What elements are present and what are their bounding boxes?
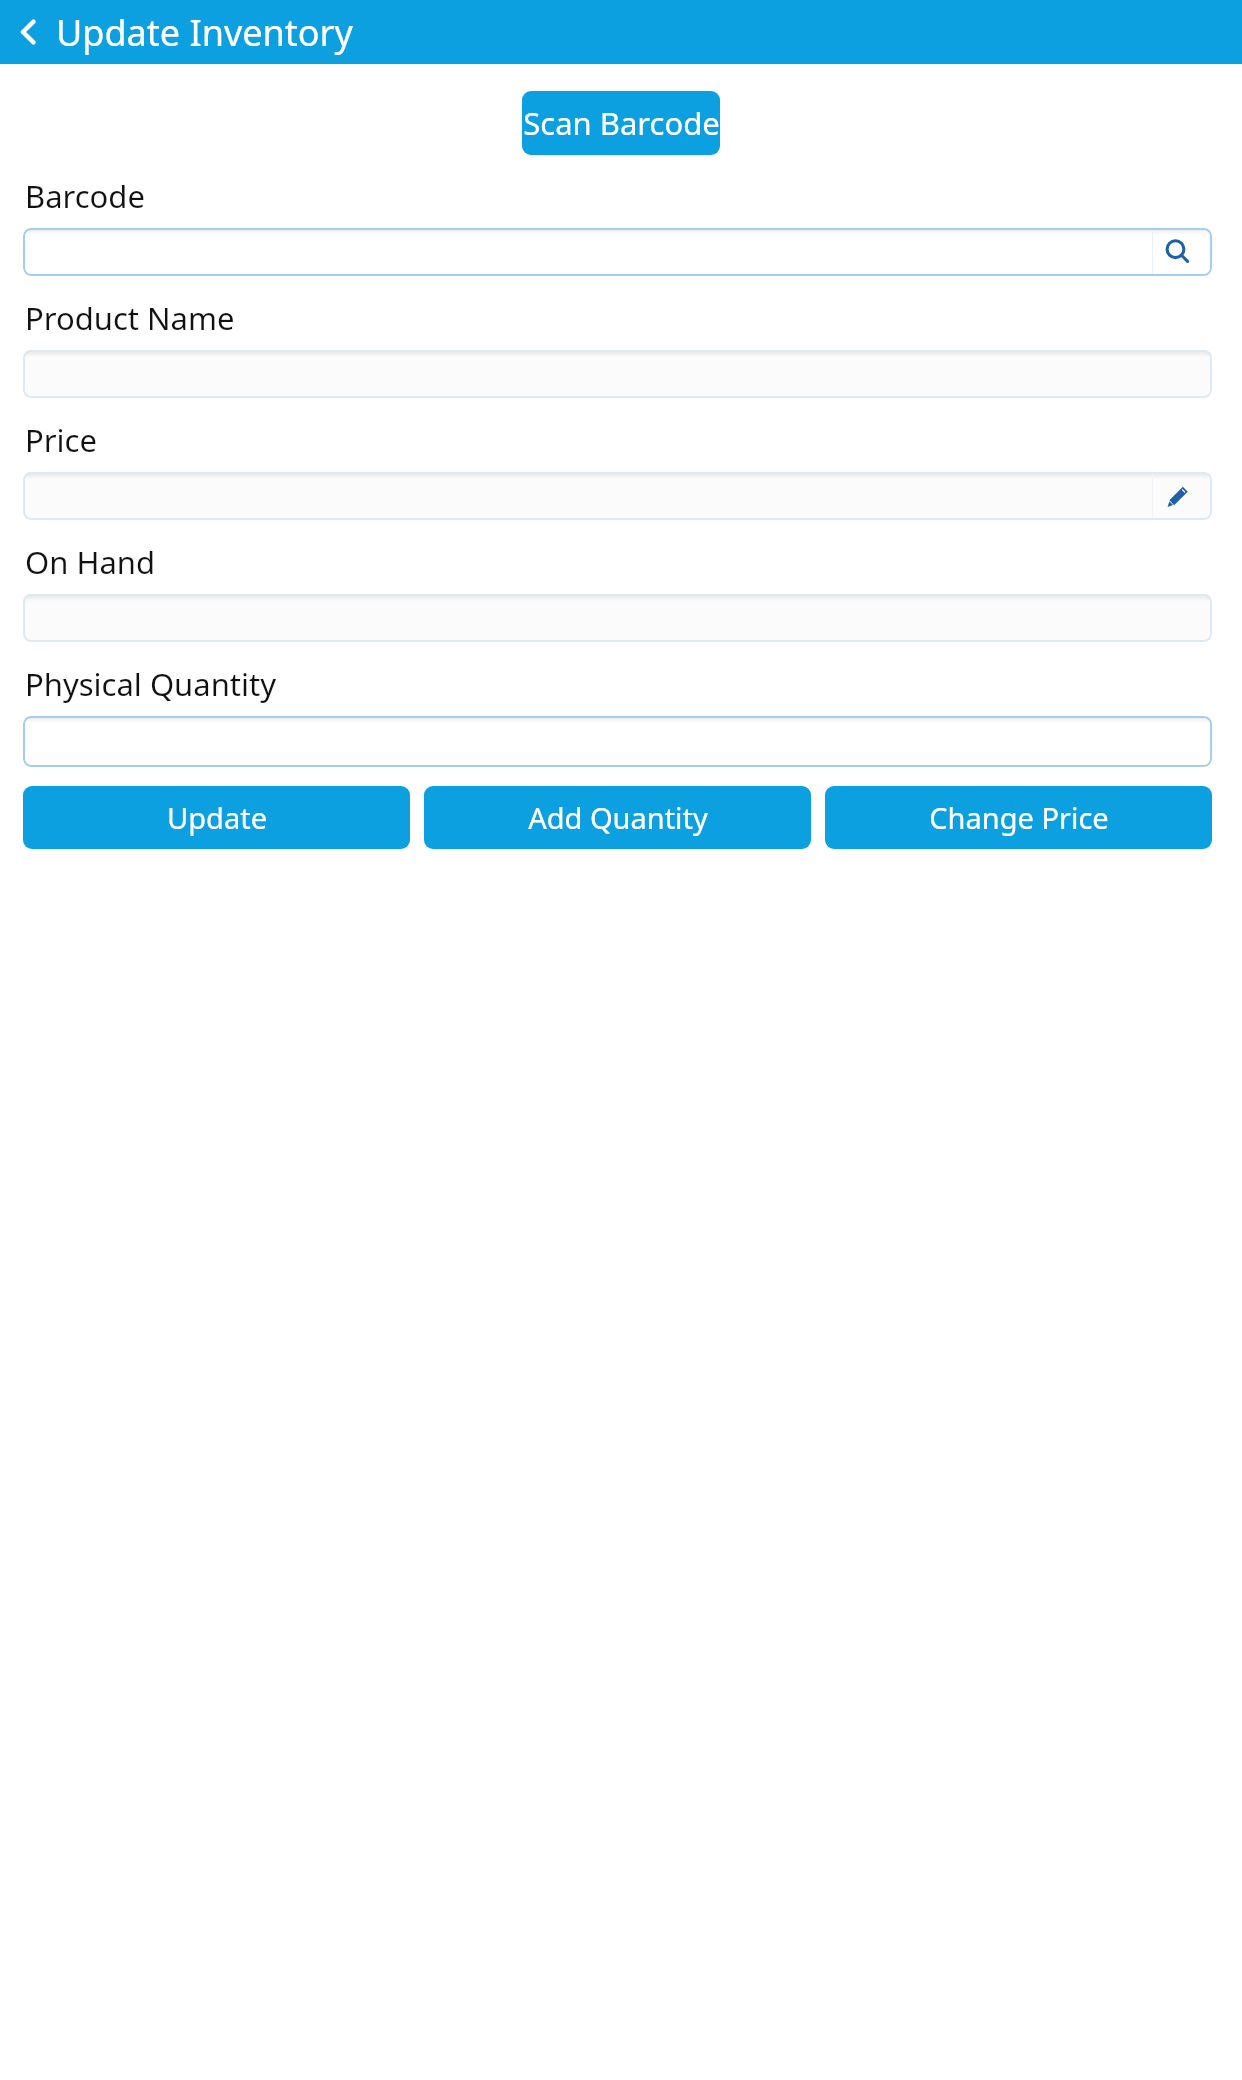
staticText: Barcode: [25, 175, 145, 217]
staticText: Product Name: [25, 297, 235, 339]
staticText: Scan Barcode: [523, 102, 720, 144]
button[interactable]: Edit price: [23, 472, 1212, 520]
button[interactable]: [23, 350, 1212, 398]
staticText: Update Inventory: [56, 8, 353, 57]
button[interactable]: [23, 716, 1212, 767]
button[interactable]: Edit price: [1158, 476, 1198, 516]
staticText: Physical Quantity: [25, 663, 277, 705]
button[interactable]: Back: [8, 10, 52, 54]
staticText: Update: [167, 798, 267, 837]
button[interactable]: Add Quantity: [424, 786, 811, 849]
button[interactable]: Search barcode: [23, 228, 1212, 276]
button[interactable]: [23, 594, 1212, 642]
button[interactable]: Change Price: [825, 786, 1212, 849]
button[interactable]: Update: [23, 786, 410, 849]
staticText: Add Quantity: [528, 798, 708, 837]
staticText: On Hand: [25, 541, 156, 583]
staticText: Change Price: [929, 798, 1109, 837]
button[interactable]: Scan Barcode: [522, 91, 720, 155]
button[interactable]: Search barcode: [1158, 232, 1198, 272]
staticText: Price: [25, 419, 97, 461]
